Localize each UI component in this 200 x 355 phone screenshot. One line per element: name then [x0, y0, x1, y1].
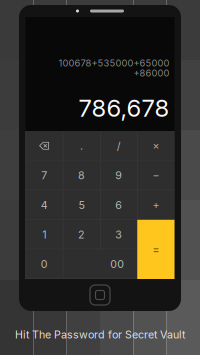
staticText: 8: [78, 169, 85, 182]
staticText: 6: [115, 198, 122, 211]
button[interactable]: 6: [100, 190, 137, 220]
button[interactable]: 00: [63, 249, 137, 279]
staticText: +: [152, 198, 159, 211]
button[interactable]: 5: [63, 190, 100, 220]
staticText: +86000: [133, 67, 169, 79]
staticText: 786,678: [78, 93, 169, 122]
staticText: 5: [78, 198, 84, 211]
staticText: 00: [110, 258, 124, 271]
button[interactable]: Home: [80, 279, 120, 311]
staticText: =: [152, 243, 159, 256]
button[interactable]: +: [137, 190, 174, 220]
staticText: 7: [41, 169, 47, 182]
button[interactable]: 2: [63, 220, 100, 249]
staticText: .: [80, 139, 83, 152]
button[interactable]: 8: [63, 161, 100, 190]
button[interactable]: ×: [137, 131, 174, 161]
button[interactable]: 0: [25, 249, 63, 279]
button[interactable]: 3: [100, 220, 137, 249]
staticText: 1: [42, 228, 46, 241]
button[interactable]: 7: [25, 161, 63, 190]
staticText: −: [152, 169, 159, 182]
button[interactable]: /: [100, 131, 137, 161]
staticText: 0: [41, 258, 48, 271]
staticText: 4: [41, 198, 48, 211]
button[interactable]: 9: [100, 161, 137, 190]
button[interactable]: 4: [25, 190, 63, 220]
button[interactable]: [25, 131, 63, 161]
button[interactable]: −: [137, 161, 174, 190]
staticText: 3: [115, 228, 122, 241]
button[interactable]: .: [63, 131, 100, 161]
staticText: 100678+535000+65000: [58, 57, 169, 69]
staticText: Hit The Password for Secret Vault: [15, 328, 185, 341]
staticText: 2: [78, 228, 85, 241]
button[interactable]: =: [137, 220, 174, 279]
staticText: ×: [152, 139, 159, 152]
staticText: 9: [115, 169, 122, 182]
button[interactable]: 1: [25, 220, 63, 249]
staticText: /: [117, 139, 121, 152]
